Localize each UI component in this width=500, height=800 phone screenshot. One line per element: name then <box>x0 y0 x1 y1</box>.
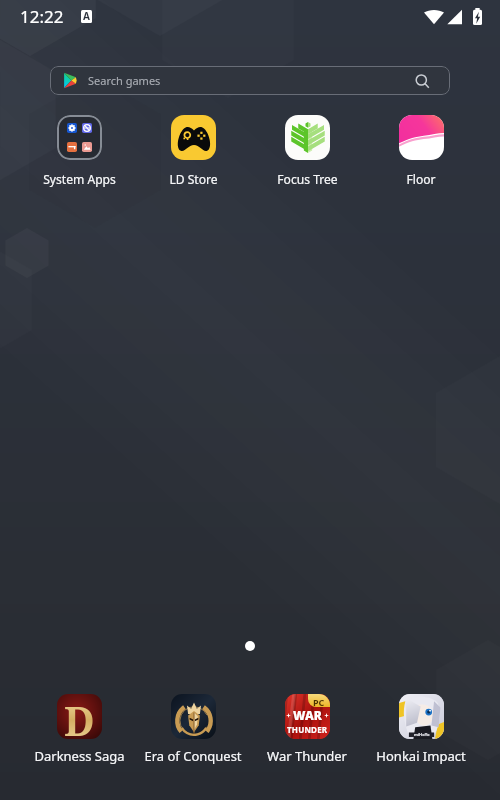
button[interactable]: Floor <box>365 111 477 191</box>
staticText: PC <box>313 696 325 707</box>
staticText: Search games <box>88 73 161 88</box>
staticText: WAR <box>293 707 322 723</box>
staticText: A <box>83 10 90 22</box>
staticText: Floor <box>406 171 436 187</box>
staticText: THUNDER <box>287 724 328 735</box>
staticText: Honkai Impact <box>376 747 466 765</box>
button[interactable]: Focus Tree <box>251 111 363 191</box>
staticText: Era of Conquest <box>144 747 242 765</box>
button[interactable]: Page 1 <box>245 641 255 651</box>
staticText: Darkness Saga <box>34 747 125 765</box>
staticText: LD Store <box>169 171 218 187</box>
staticText: System Apps <box>43 171 116 187</box>
button[interactable]: miHoYo <box>365 690 477 769</box>
button[interactable]: Era of Conquest <box>137 690 249 769</box>
staticText: miHoYo <box>414 732 430 737</box>
button[interactable]: D <box>23 690 135 769</box>
staticText: D <box>64 694 95 738</box>
button[interactable]: LD Store <box>137 111 249 191</box>
staticText: War Thunder <box>267 747 347 765</box>
button[interactable]: Search games <box>50 66 450 95</box>
staticText: Focus Tree <box>277 171 338 187</box>
button[interactable]: PC <box>251 690 363 769</box>
button[interactable]: Search <box>413 72 431 90</box>
staticText: 12:22 <box>20 5 64 28</box>
button[interactable]: System Apps <box>23 111 135 191</box>
